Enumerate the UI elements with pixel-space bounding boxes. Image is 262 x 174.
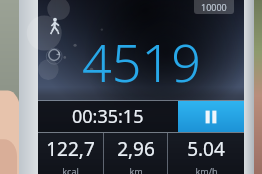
button[interactable]: Reset counter: [47, 47, 63, 63]
staticText: 2,96: [117, 136, 155, 162]
button[interactable]: 2,96: [104, 133, 167, 174]
button[interactable]: 4519: [38, 26, 244, 97]
staticText: 00:35:15: [72, 104, 144, 129]
button[interactable]: 10000: [201, 1, 227, 13]
staticText: 122,7: [46, 136, 95, 162]
button[interactable]: 122,7: [38, 133, 103, 174]
staticText: kcal: [62, 165, 79, 174]
staticText: km/h: [195, 165, 218, 174]
button[interactable]: Walking activity: [46, 17, 64, 35]
staticText: km: [129, 165, 143, 174]
button[interactable]: 00:35:15: [38, 101, 178, 132]
button[interactable]: Pause: [178, 101, 244, 132]
staticText: 10000: [201, 1, 227, 13]
staticText: 4519: [82, 26, 201, 97]
button[interactable]: 5.04: [168, 133, 244, 174]
staticText: 5.04: [187, 136, 225, 162]
